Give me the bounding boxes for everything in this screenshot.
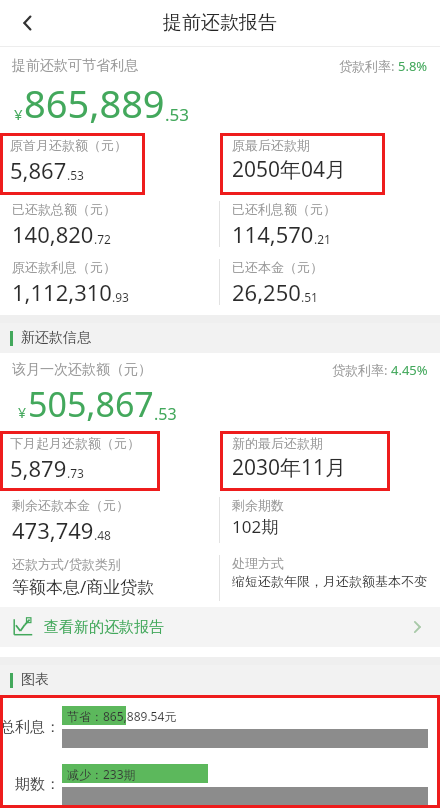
- staticText: 865,889: [24, 77, 165, 129]
- staticText: 已还本金（元）: [232, 259, 323, 275]
- staticText: 贷款利率:: [339, 57, 398, 75]
- staticText: 剩余期数: [232, 497, 284, 513]
- staticText: 提前还款报告: [163, 11, 277, 35]
- staticText: 缩短还款年限，月还款额基本不变: [232, 573, 427, 589]
- staticText: .53: [154, 403, 177, 425]
- staticText: 总利息：: [0, 718, 60, 737]
- staticText: .93: [112, 289, 129, 305]
- button[interactable]: Back: [6, 1, 50, 45]
- button[interactable]: 查看新的还款报告: [0, 607, 440, 647]
- staticText: 图表: [21, 671, 49, 689]
- staticText: 5,879: [10, 453, 67, 483]
- staticText: 期数：: [15, 775, 60, 794]
- staticText: 505,867: [28, 381, 154, 427]
- staticText: 节省：865,889.54元: [67, 708, 177, 724]
- staticText: 已还利息额（元）: [232, 201, 336, 217]
- staticText: 2030年11月: [232, 453, 347, 482]
- staticText: .73: [67, 465, 84, 481]
- staticText: 处理方式: [232, 555, 284, 571]
- staticText: 5.8%: [398, 57, 428, 75]
- staticText: 473,749: [12, 515, 94, 545]
- staticText: .72: [94, 231, 111, 247]
- staticText: 原还款利息（元）: [12, 259, 116, 275]
- staticText: 1,112,310: [12, 277, 112, 307]
- staticText: .53: [165, 103, 190, 126]
- staticText: 102期: [232, 515, 279, 538]
- staticText: .51: [301, 289, 318, 305]
- staticText: 已还款总额（元）: [12, 201, 116, 217]
- staticText: 等额本息/商业贷款: [12, 575, 155, 598]
- staticText: .21: [314, 231, 331, 247]
- staticText: 原最后还款期: [232, 137, 310, 153]
- staticText: 26,250: [232, 277, 301, 307]
- staticText: 剩余还款本金（元）: [12, 497, 129, 513]
- staticText: 还款方式/贷款类别: [12, 555, 121, 573]
- staticText: 4.45%: [391, 361, 428, 379]
- staticText: 140,820: [12, 219, 94, 249]
- staticText: 提前还款可节省利息: [12, 57, 138, 75]
- staticText: 2050年04月: [232, 155, 347, 184]
- staticText: 114,570: [232, 219, 314, 249]
- staticText: 下月起月还款额（元）: [10, 435, 140, 451]
- staticText: 查看新的还款报告: [44, 618, 164, 637]
- staticText: ¥: [18, 403, 27, 422]
- staticText: ¥: [14, 104, 23, 124]
- staticText: 该月一次还款额（元）: [12, 361, 152, 379]
- staticText: 5,867: [10, 155, 67, 185]
- staticText: .53: [67, 167, 84, 183]
- staticText: .48: [94, 527, 111, 543]
- staticText: 减少：233期: [67, 766, 136, 782]
- staticText: 原首月还款额（元）: [10, 137, 127, 153]
- staticText: 新还款信息: [21, 329, 91, 347]
- staticText: 贷款利率:: [332, 361, 391, 379]
- staticText: 新的最后还款期: [232, 435, 323, 451]
